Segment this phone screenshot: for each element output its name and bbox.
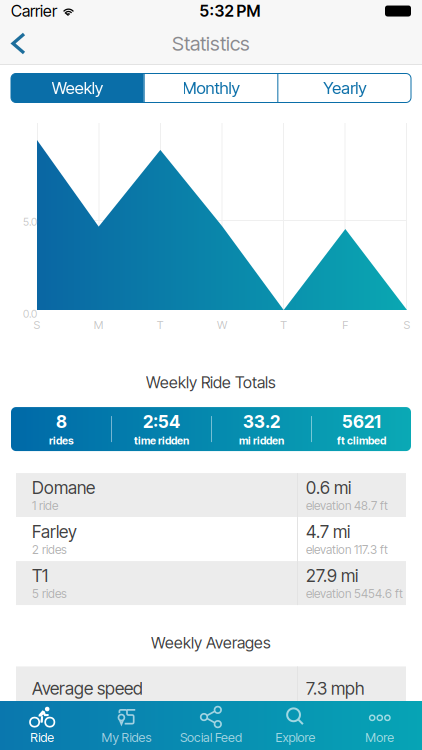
button[interactable]: Domane xyxy=(16,473,406,517)
button[interactable]: Monthly xyxy=(145,73,277,102)
staticText: S xyxy=(33,318,40,332)
staticText: Social Feed xyxy=(180,730,242,745)
staticText: time ridden xyxy=(134,434,189,447)
staticText: Carrier xyxy=(11,1,57,21)
staticText: elevation 5454.6 ft xyxy=(306,586,403,601)
staticText: Average speed xyxy=(32,678,143,699)
button[interactable]: Weekly xyxy=(11,73,144,102)
staticText: 5:32 PM xyxy=(199,1,260,21)
staticText: W xyxy=(217,318,227,332)
button[interactable]: Back xyxy=(0,23,40,64)
staticText: mi ridden xyxy=(239,434,284,447)
staticText: 8 xyxy=(56,411,67,432)
staticText: My Rides xyxy=(102,730,152,745)
staticText: Monthly xyxy=(182,78,239,98)
staticText: Domane xyxy=(32,477,95,498)
staticText: Weekly xyxy=(52,78,103,98)
staticText: ft climbed xyxy=(337,434,386,447)
staticText: Explore xyxy=(275,730,315,745)
staticText: 5 rides xyxy=(32,586,67,601)
staticText: Farley xyxy=(32,521,77,542)
staticText: M xyxy=(94,318,104,332)
staticText: 1 ride xyxy=(32,498,58,513)
staticText: 27.9 mi xyxy=(306,565,358,586)
staticText: F xyxy=(342,318,348,332)
staticText: 33.2 xyxy=(243,411,280,432)
staticText: rides xyxy=(49,434,74,447)
staticText: elevation 117.3 ft xyxy=(306,542,388,557)
staticText: T xyxy=(280,318,287,332)
staticText: Statistics xyxy=(172,31,250,56)
staticText: elevation 48.7 ft xyxy=(306,498,388,513)
button[interactable]: More xyxy=(338,701,422,750)
button[interactable]: Average speed xyxy=(16,666,406,710)
staticText: 2:54 xyxy=(143,411,180,432)
staticText: S xyxy=(403,318,410,332)
staticText: 7.3 mph xyxy=(306,678,364,699)
staticText: 4.7 mi xyxy=(306,521,350,542)
staticText: 5.0 xyxy=(23,215,37,228)
staticText: Yearly xyxy=(323,78,366,98)
staticText: Ride xyxy=(30,730,54,745)
staticText: T1 xyxy=(32,565,48,586)
button[interactable]: Farley xyxy=(16,517,406,561)
button[interactable]: Explore xyxy=(253,701,338,750)
staticText: 0.0 xyxy=(23,307,37,320)
button[interactable]: T1 xyxy=(16,561,406,605)
staticText: Weekly Averages xyxy=(151,633,271,652)
button[interactable]: Ride xyxy=(0,701,84,750)
staticText: Weekly Ride Totals xyxy=(146,373,276,392)
staticText: 2 rides xyxy=(32,542,67,557)
button[interactable]: My Rides xyxy=(84,701,169,750)
staticText: 0.6 mi xyxy=(306,477,351,498)
button[interactable]: Social Feed xyxy=(169,701,253,750)
staticText: T xyxy=(157,318,164,332)
staticText: 5621 xyxy=(342,411,381,432)
button[interactable]: Yearly xyxy=(278,73,411,102)
staticText: More xyxy=(365,730,394,745)
